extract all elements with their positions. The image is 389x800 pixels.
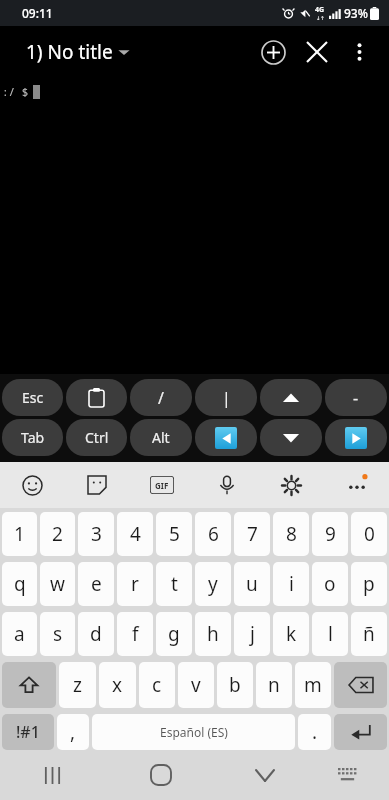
button[interactable]: i	[273, 562, 309, 606]
staticText: ,	[70, 719, 76, 745]
staticText: b	[229, 672, 241, 698]
button[interactable]: o	[312, 562, 348, 606]
staticText: 2	[52, 521, 63, 547]
button[interactable]: Sticker	[64, 462, 129, 508]
staticText: Ctrl	[85, 428, 109, 447]
staticText: f	[132, 621, 139, 647]
button[interactable]: CLIP	[66, 379, 127, 416]
staticText: 8	[286, 521, 297, 547]
staticText: 09:11	[22, 5, 53, 21]
button[interactable]: f	[117, 612, 153, 656]
button[interactable]: Hide keyboard	[217, 750, 312, 800]
staticText: p	[363, 571, 375, 597]
button[interactable]: j	[234, 612, 270, 656]
button[interactable]: Switch keyboard	[312, 750, 383, 800]
staticText: Esc	[22, 388, 44, 407]
button[interactable]: z	[59, 662, 96, 708]
button[interactable]: Recents	[0, 750, 104, 800]
staticText: Tab	[21, 428, 45, 447]
button[interactable]: u	[234, 562, 270, 606]
staticText: q	[14, 571, 26, 597]
button[interactable]: |	[195, 379, 257, 416]
button[interactable]: l	[312, 612, 348, 656]
staticText: 9	[325, 521, 336, 547]
button[interactable]: Backspace	[334, 662, 387, 708]
button[interactable]: 0	[351, 512, 387, 556]
staticText: g	[168, 621, 180, 647]
staticText: 6	[208, 521, 219, 547]
staticText: 1) No title	[26, 39, 113, 65]
button[interactable]: r	[117, 562, 153, 606]
button[interactable]: 3	[78, 512, 114, 556]
button[interactable]: 1) No title	[26, 39, 131, 65]
staticText: 5	[169, 521, 180, 547]
button[interactable]: p	[351, 562, 387, 606]
staticText: r	[131, 571, 139, 597]
button[interactable]: x	[99, 662, 136, 708]
button[interactable]: Voice input	[194, 462, 259, 508]
button[interactable]: b	[217, 662, 253, 708]
staticText: j	[250, 621, 255, 647]
button[interactable]: g	[156, 612, 192, 656]
button[interactable]: LEFT	[195, 419, 257, 456]
button[interactable]: Esc	[2, 379, 63, 416]
button[interactable]: .	[298, 714, 331, 750]
button[interactable]: a	[2, 612, 37, 656]
button[interactable]: ,	[57, 714, 89, 750]
staticText: z	[73, 672, 82, 698]
button[interactable]: !#1	[2, 714, 54, 750]
staticText: Alt	[152, 428, 170, 447]
staticText: c	[152, 672, 162, 698]
button[interactable]: h	[195, 612, 231, 656]
button[interactable]: d	[78, 612, 114, 656]
button[interactable]: 4	[117, 512, 153, 556]
staticText: y	[208, 571, 218, 597]
button[interactable]: q	[2, 562, 37, 606]
button[interactable]: Close session	[295, 30, 339, 74]
button[interactable]: 5	[156, 512, 192, 556]
button[interactable]: Tab	[2, 419, 63, 456]
button[interactable]: DOWN	[260, 419, 322, 456]
staticText: v	[191, 672, 201, 698]
button[interactable]: Shift	[2, 662, 56, 708]
button[interactable]: GIF	[129, 462, 194, 508]
staticText: -	[353, 387, 359, 409]
button[interactable]: t	[156, 562, 192, 606]
button[interactable]: /	[130, 379, 192, 416]
button[interactable]: Enter	[334, 714, 387, 750]
button[interactable]: Alt	[130, 419, 192, 456]
button[interactable]: w	[40, 562, 75, 606]
button[interactable]: 2	[40, 512, 75, 556]
button[interactable]: n	[256, 662, 292, 708]
button[interactable]: Settings	[259, 462, 324, 508]
button[interactable]: -	[325, 379, 387, 416]
button[interactable]: New session	[251, 30, 295, 74]
staticText: 93%	[344, 5, 368, 21]
button[interactable]: 7	[234, 512, 270, 556]
button[interactable]: More	[324, 462, 389, 508]
button[interactable]: y	[195, 562, 231, 606]
button[interactable]: RIGHT	[325, 419, 387, 456]
button[interactable]: 1	[2, 512, 37, 556]
button[interactable]: v	[178, 662, 214, 708]
button[interactable]: k	[273, 612, 309, 656]
button[interactable]: c	[139, 662, 175, 708]
button[interactable]	[260, 379, 322, 416]
button[interactable]: ñ	[351, 612, 387, 656]
button[interactable]: s	[40, 612, 75, 656]
button[interactable]: m	[295, 662, 331, 708]
staticText: o	[324, 571, 336, 597]
button[interactable]: 8	[273, 512, 309, 556]
button[interactable]: Home	[104, 750, 217, 800]
button[interactable]: Ctrl	[66, 419, 127, 456]
button[interactable]: 6	[195, 512, 231, 556]
button[interactable]: Emoji	[0, 462, 64, 508]
staticText: t	[171, 571, 178, 597]
staticText: e	[91, 571, 102, 597]
button[interactable]: e	[78, 562, 114, 606]
staticText: h	[207, 621, 219, 647]
staticText: 3	[91, 521, 102, 547]
button[interactable]: More options	[339, 32, 379, 72]
button[interactable]: 9	[312, 512, 348, 556]
button[interactable]: Español (ES)	[92, 714, 295, 750]
